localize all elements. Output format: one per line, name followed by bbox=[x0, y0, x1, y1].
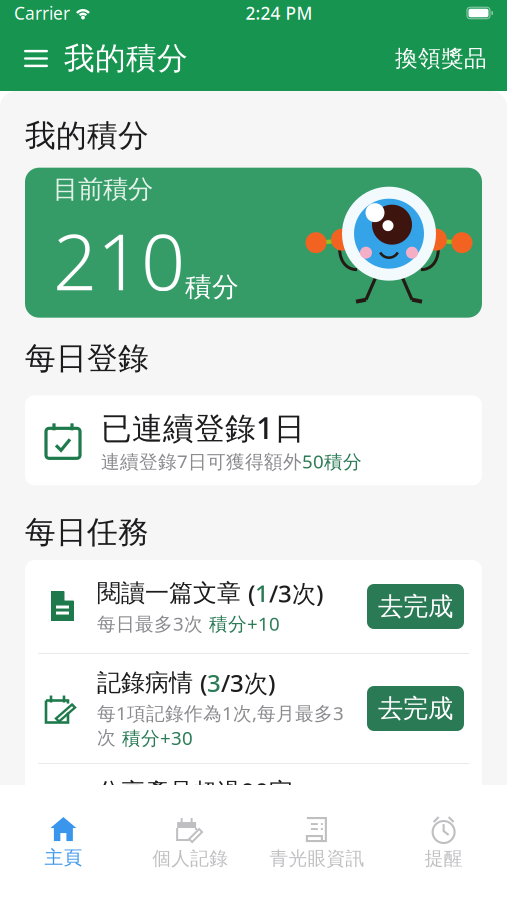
staticText: 主頁 bbox=[44, 846, 82, 869]
staticText: 我的積分 bbox=[25, 117, 149, 155]
staticText: 已連續登錄1日 bbox=[101, 407, 305, 448]
staticText: 閱讀一篇文章 bbox=[97, 578, 248, 608]
staticText: 換領獎品 bbox=[395, 45, 487, 72]
button[interactable]: 換領獎品 bbox=[389, 36, 493, 80]
staticText: ( bbox=[248, 577, 255, 609]
staticText: 每日登錄 bbox=[25, 340, 149, 377]
staticText: Carrier bbox=[14, 1, 70, 24]
staticText: /3次) bbox=[269, 577, 323, 609]
button[interactable]: Menu bbox=[14, 36, 58, 80]
staticText: 1 bbox=[255, 577, 269, 609]
staticText: ( bbox=[200, 667, 207, 699]
staticText: 每日任務 bbox=[25, 513, 149, 551]
staticText: 50積分 bbox=[302, 449, 362, 474]
staticText: 記錄病情 bbox=[97, 668, 200, 697]
button[interactable]: 提醒 bbox=[380, 807, 507, 878]
staticText: 積分 bbox=[185, 271, 239, 304]
staticText: 去完成 bbox=[378, 693, 453, 724]
button[interactable]: 主頁 bbox=[0, 808, 127, 877]
button[interactable]: 青光眼資訊 bbox=[253, 807, 380, 878]
staticText: 個人記錄 bbox=[152, 847, 228, 870]
staticText: 3 bbox=[207, 667, 221, 699]
staticText: 積分+10 bbox=[209, 611, 280, 636]
staticText: 2:24 PM bbox=[245, 1, 312, 24]
staticText: 分享產品超過90字 bbox=[97, 775, 293, 807]
staticText: 去完成 bbox=[378, 591, 453, 622]
button[interactable]: 閱讀一篇文章 bbox=[25, 560, 482, 653]
button[interactable]: 記錄病情 bbox=[25, 654, 482, 763]
staticText: 青光眼資訊 bbox=[269, 847, 364, 870]
staticText: /3次) bbox=[221, 667, 275, 699]
staticText: 積分+30 bbox=[122, 725, 193, 750]
staticText: 連續登錄7日可獲得額外 bbox=[101, 449, 302, 474]
staticText: 210 bbox=[53, 209, 185, 312]
staticText: 提醒 bbox=[425, 847, 463, 870]
staticText: 我的積分 bbox=[64, 40, 188, 77]
staticText: 每日最多3次 bbox=[97, 611, 209, 636]
staticText: 每1項記錄作為1次,每月最多3 bbox=[97, 701, 344, 725]
staticText: 目前積分 bbox=[53, 174, 153, 205]
button[interactable]: 已連續登錄1日 bbox=[25, 395, 482, 485]
staticText: 次 bbox=[97, 726, 122, 749]
button[interactable]: 個人記錄 bbox=[127, 807, 254, 878]
